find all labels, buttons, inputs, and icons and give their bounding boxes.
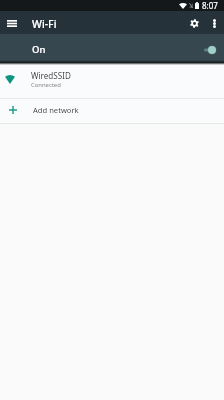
staticText: On <box>32 43 46 56</box>
button[interactable]: Open navigation drawer <box>0 11 24 34</box>
button[interactable]: Settings <box>183 12 205 34</box>
staticText: Add network <box>33 105 79 115</box>
staticText: Wi-Fi <box>32 17 57 31</box>
button[interactable]: On <box>0 34 224 63</box>
staticText: Connected <box>31 81 61 89</box>
staticText: WiredSSID <box>31 70 71 81</box>
button[interactable]: WiredSSID <box>0 63 224 98</box>
button[interactable]: More options <box>205 14 223 32</box>
button[interactable]: Add network <box>0 99 224 123</box>
staticText: 8:07 <box>202 0 218 11</box>
